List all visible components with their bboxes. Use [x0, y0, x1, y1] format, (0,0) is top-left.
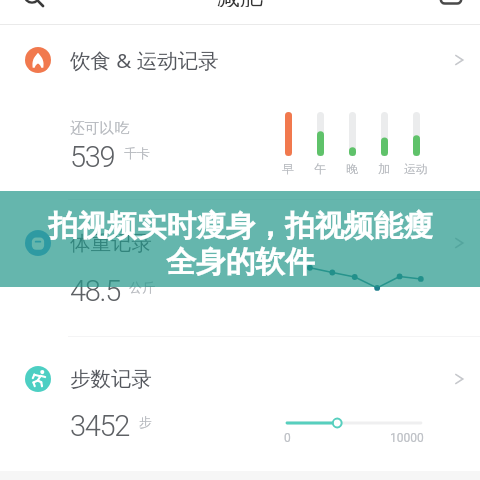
staticText: 晚: [346, 162, 358, 177]
staticText: 午: [314, 162, 326, 177]
staticText: 3452: [70, 409, 130, 443]
staticText: 公斤: [129, 279, 155, 295]
button[interactable]: 体重记录: [0, 229, 480, 256]
staticText: 539: [70, 140, 115, 174]
staticText: 0: [284, 431, 291, 445]
staticText: 拍视频实时瘦身，拍视频能瘦全身的软件: [38, 207, 443, 281]
button[interactable]: Search: [15, 0, 49, 7]
staticText: 10000: [390, 431, 424, 445]
staticText: 加: [378, 162, 390, 177]
staticText: 步数记录: [70, 366, 152, 392]
button[interactable]: More: [434, 0, 468, 9]
staticText: 48.5: [70, 274, 120, 308]
staticText: 早: [282, 162, 294, 177]
staticText: 减肥: [217, 0, 263, 7]
button[interactable]: 步数记录: [0, 365, 480, 392]
staticText: 饮食 & 运动记录: [70, 46, 219, 73]
staticText: 步: [139, 414, 152, 430]
staticText: 千卡: [124, 145, 150, 161]
staticText: 运动: [404, 162, 428, 177]
staticText: 体重记录: [70, 230, 152, 256]
button[interactable]: 饮食 & 运动记录: [0, 46, 480, 73]
staticText: 还可以吃: [70, 119, 130, 138]
